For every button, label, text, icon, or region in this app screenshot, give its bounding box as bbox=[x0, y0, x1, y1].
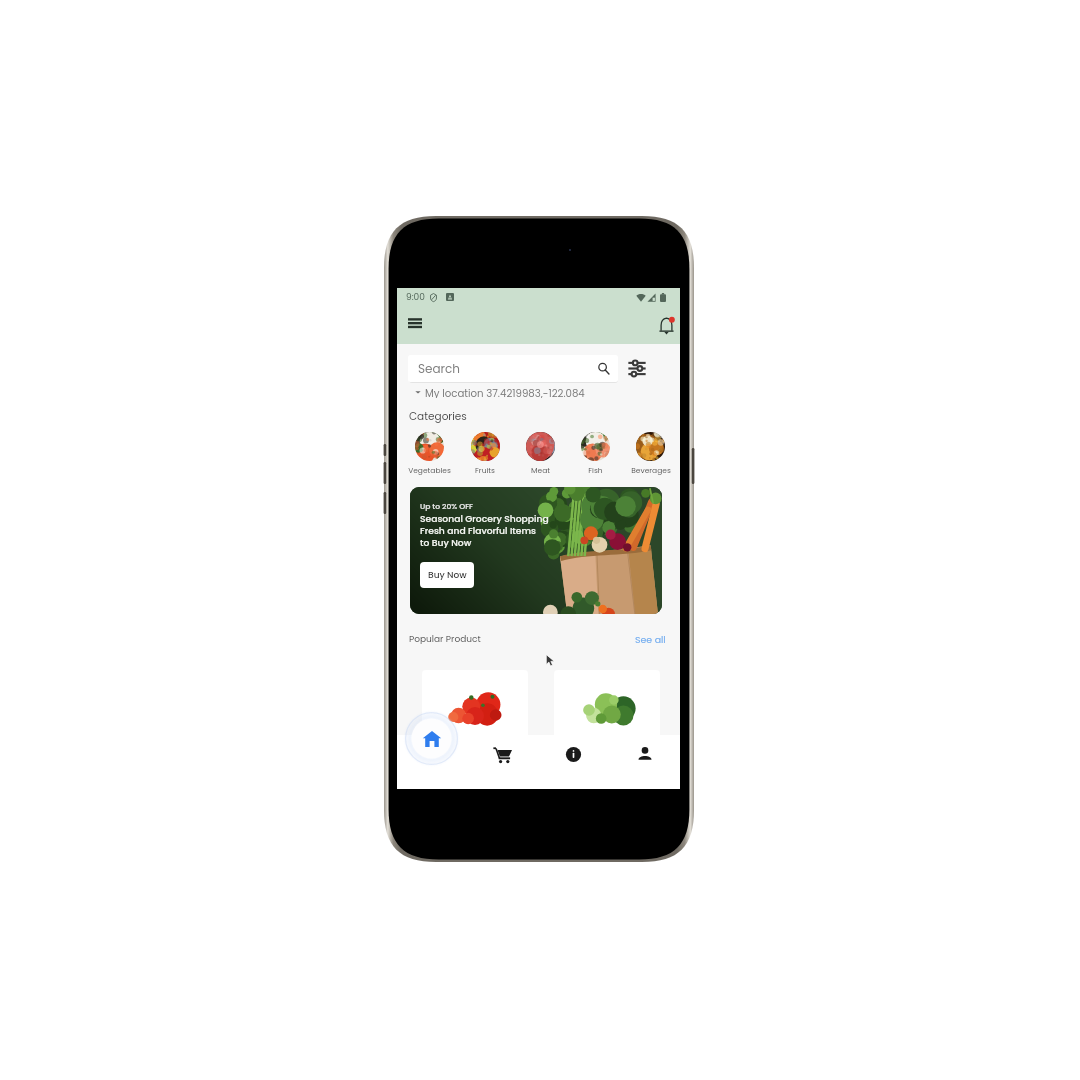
staticText: Seasonal Grocery Shopping Fresh and Flav… bbox=[420, 512, 549, 549]
button[interactable]: Buy Now bbox=[420, 562, 474, 588]
button[interactable]: Cart bbox=[467, 735, 538, 789]
staticText: 9:00 bbox=[406, 291, 425, 304]
staticText: Fish bbox=[588, 465, 603, 475]
button[interactable]: Filter bbox=[626, 357, 648, 379]
staticText: See all bbox=[635, 633, 666, 646]
staticText: Popular Product bbox=[409, 633, 481, 646]
button[interactable]: Profile bbox=[609, 735, 680, 789]
button[interactable]: Meat bbox=[513, 432, 568, 475]
button[interactable] bbox=[554, 670, 660, 770]
staticText: Categories bbox=[409, 409, 467, 424]
staticText: My location 37.4219983,-122.084 bbox=[425, 386, 585, 398]
staticText: Beverages bbox=[631, 465, 671, 475]
staticText: Up to 20% OFF bbox=[420, 501, 474, 512]
button[interactable]: Menu bbox=[401, 308, 429, 336]
button[interactable]: Beverages bbox=[623, 432, 678, 475]
staticText: Fruits bbox=[475, 465, 495, 475]
staticText: Vegetables bbox=[408, 465, 451, 475]
button[interactable] bbox=[422, 670, 528, 770]
button[interactable]: Search bbox=[408, 355, 618, 382]
staticText: Buy Now bbox=[428, 569, 467, 582]
button[interactable]: Fruits bbox=[457, 432, 513, 475]
button[interactable]: Notifications bbox=[652, 312, 680, 340]
button[interactable]: Home bbox=[403, 710, 460, 767]
button[interactable]: Info bbox=[538, 735, 609, 789]
button[interactable]: Up to 20% OFF bbox=[410, 487, 662, 614]
button[interactable]: Home bbox=[397, 735, 467, 789]
button[interactable]: See all bbox=[635, 633, 666, 646]
button[interactable]: Fish bbox=[568, 432, 623, 475]
button[interactable]: Vegetables bbox=[401, 432, 457, 475]
staticText: Search bbox=[418, 360, 461, 377]
staticText: Meat bbox=[531, 465, 550, 475]
